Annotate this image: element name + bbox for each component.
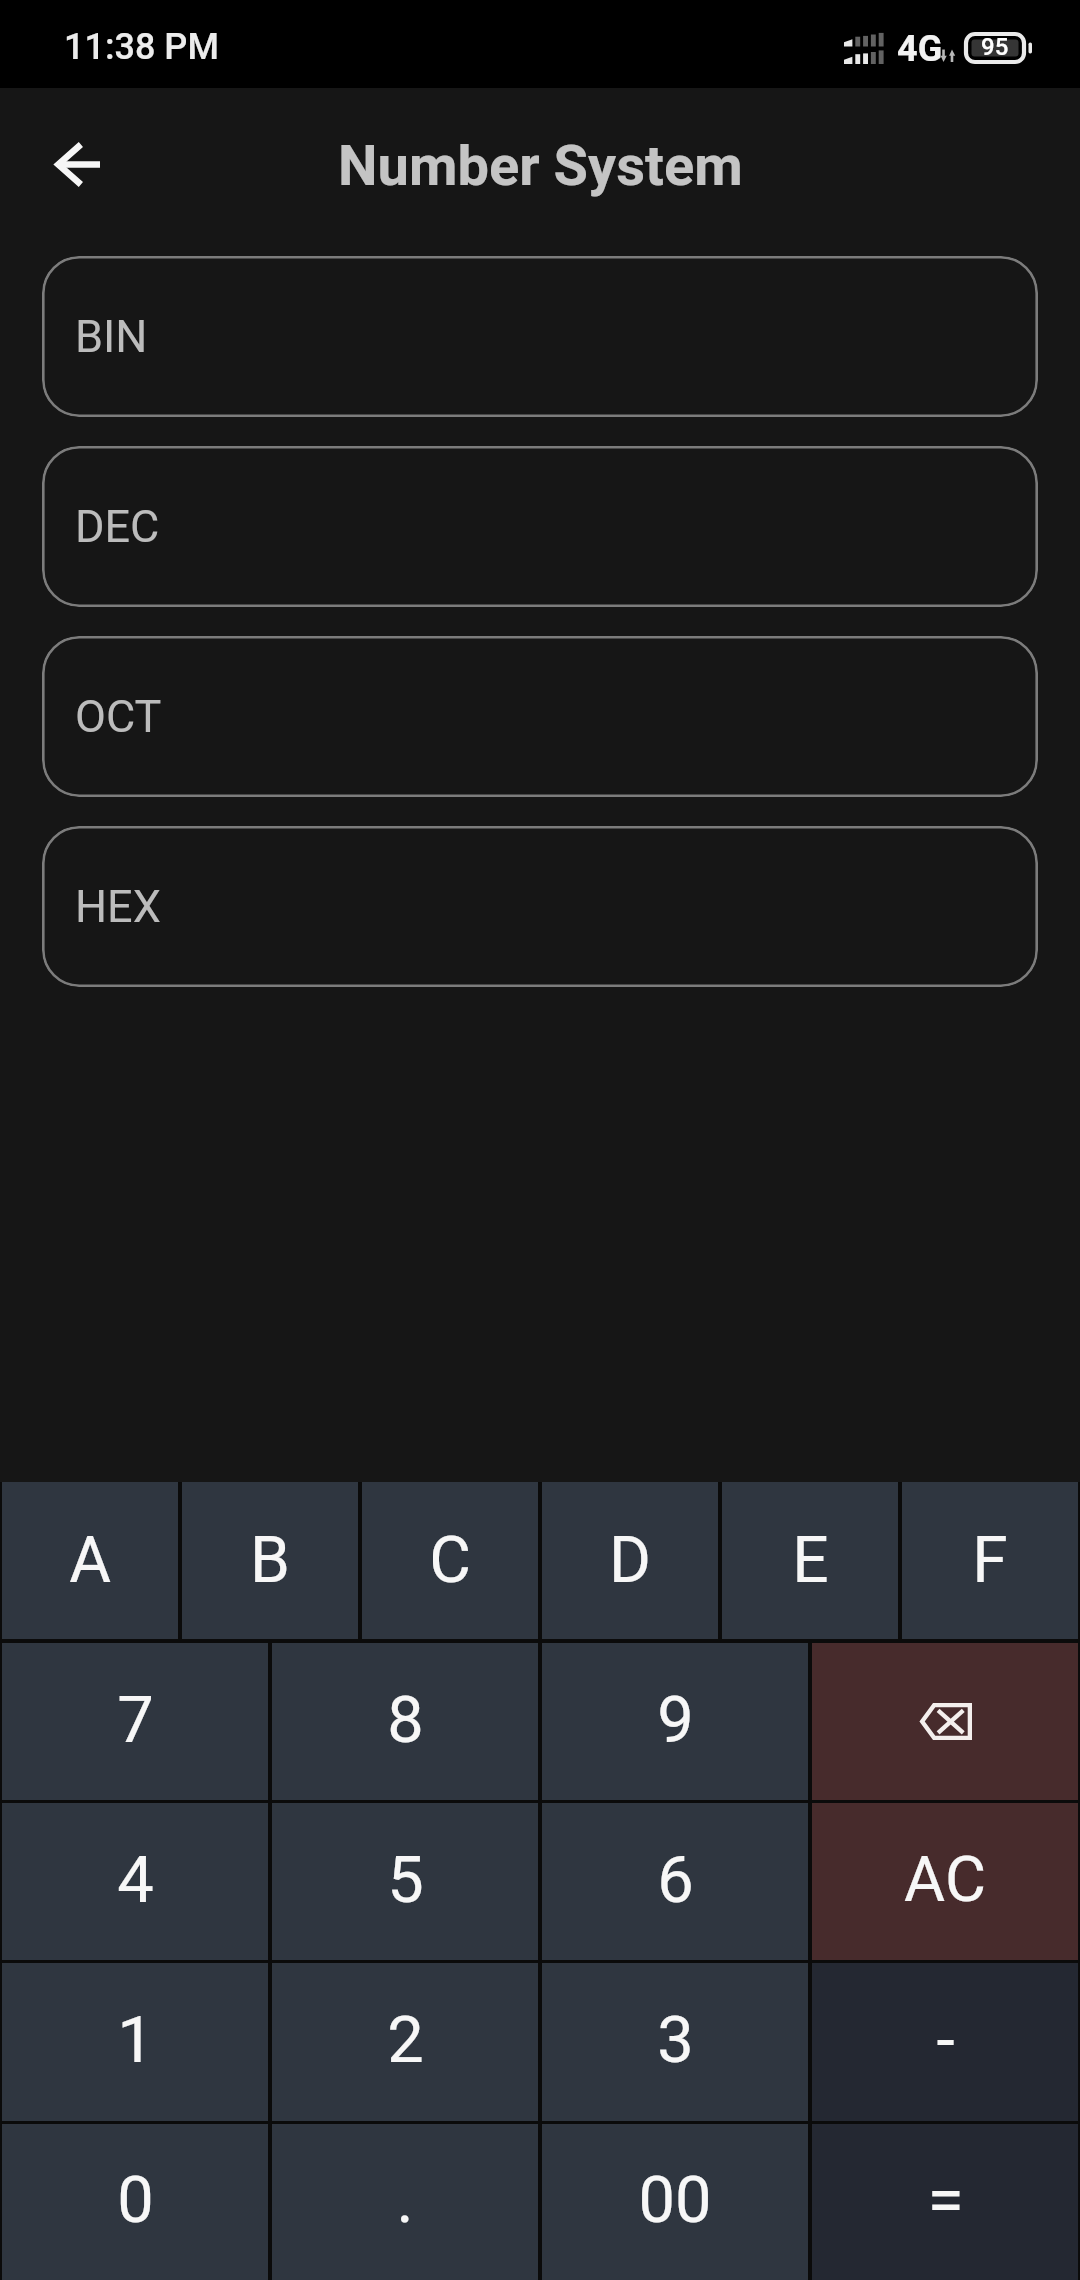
staticText: 4G	[897, 28, 943, 70]
staticText: E	[792, 1523, 829, 1598]
staticText: DEC	[75, 500, 160, 553]
button[interactable]: OCT	[42, 636, 1038, 797]
button[interactable]: 5	[272, 1803, 538, 1960]
staticText: 9	[657, 1682, 694, 1758]
button[interactable]: 6	[542, 1803, 808, 1960]
button[interactable]: 00	[542, 2124, 808, 2280]
staticText: =	[927, 2162, 964, 2239]
staticText: -	[936, 2002, 955, 2079]
button[interactable]: AC	[812, 1803, 1078, 1960]
button[interactable]: A	[2, 1482, 178, 1639]
staticText: 3	[657, 2002, 694, 2078]
staticText: A	[69, 1523, 111, 1598]
button[interactable]: =	[812, 2124, 1078, 2280]
staticText: HEX	[75, 880, 161, 933]
button[interactable]: 9	[542, 1643, 808, 1800]
staticText: 7	[117, 1682, 154, 1758]
button[interactable]: 3	[542, 1963, 808, 2121]
staticText: 2	[387, 2002, 424, 2078]
button[interactable]: 2	[272, 1963, 538, 2121]
staticText: Number System	[338, 133, 743, 199]
button[interactable]: .	[272, 2124, 538, 2280]
button[interactable]: Back	[32, 119, 122, 209]
button[interactable]: 8	[272, 1643, 538, 1800]
staticText: 11:38 PM	[64, 26, 219, 68]
button[interactable]: 4	[2, 1803, 268, 1960]
button[interactable]: F	[902, 1482, 1078, 1639]
staticText: 6	[657, 1842, 694, 1918]
button[interactable]: DEC	[42, 446, 1038, 607]
staticText: C	[429, 1523, 471, 1598]
button[interactable]: Backspace	[812, 1643, 1078, 1800]
staticText: 8	[387, 1682, 424, 1758]
staticText: F	[972, 1523, 1008, 1598]
staticText: 5	[387, 1842, 424, 1918]
button[interactable]: HEX	[42, 826, 1038, 987]
staticText: 1	[117, 2002, 154, 2078]
button[interactable]: C	[362, 1482, 538, 1639]
button[interactable]: -	[812, 1963, 1078, 2121]
button[interactable]: D	[542, 1482, 718, 1639]
button[interactable]: 1	[2, 1963, 268, 2121]
button[interactable]: 7	[2, 1643, 268, 1800]
button[interactable]: E	[722, 1482, 898, 1639]
staticText: 4	[117, 1842, 154, 1918]
staticText: OCT	[75, 690, 162, 743]
button[interactable]: B	[182, 1482, 358, 1639]
staticText: BIN	[75, 310, 148, 363]
staticText: 00	[638, 2162, 712, 2238]
staticText: B	[250, 1523, 290, 1598]
staticText: AC	[904, 1843, 986, 1917]
staticText: D	[609, 1523, 651, 1598]
button[interactable]: BIN	[42, 256, 1038, 417]
staticText: 0	[117, 2162, 154, 2238]
staticText: .	[396, 2162, 414, 2238]
button[interactable]: 0	[2, 2124, 268, 2280]
staticText: 95	[981, 33, 1009, 61]
